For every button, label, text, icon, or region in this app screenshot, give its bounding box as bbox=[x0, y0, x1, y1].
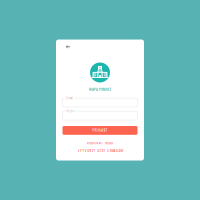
button[interactable]: PŘIHLÁSIT bbox=[62, 126, 137, 135]
staticText: MAPA POMOCI bbox=[89, 88, 111, 91]
staticText: PŘIHLÁSIT bbox=[92, 129, 108, 132]
staticText: VYTVOŘIT ÚČET S EMAILEM bbox=[78, 149, 122, 153]
staticText: E-mail bbox=[66, 96, 73, 100]
button[interactable]: VYTVOŘIT ÚČET S EMAILEM bbox=[62, 149, 137, 153]
button[interactable]: RESETOVAT HESLO bbox=[62, 141, 137, 145]
staticText: RESETOVAT HESLO bbox=[87, 141, 113, 145]
staticText: Heslo bbox=[66, 109, 74, 113]
button[interactable]: Back bbox=[64, 43, 72, 51]
